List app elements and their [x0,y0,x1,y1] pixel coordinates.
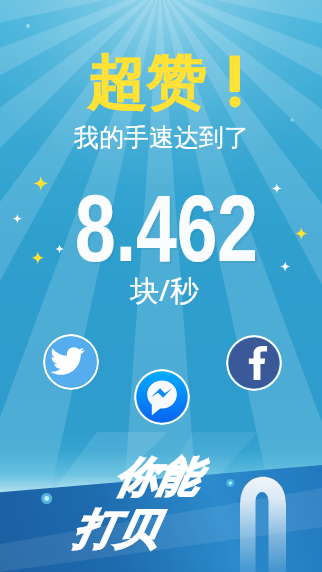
staticText: 打贝 [72,504,156,557]
staticText: 8.462 [77,177,260,283]
button[interactable]: Share on Facebook [226,335,282,391]
staticText: 块/秒 [130,270,199,310]
staticText: 我的手速达到了 [74,122,249,153]
button[interactable]: Share on Messenger [134,369,190,425]
button[interactable]: Share on Twitter [43,334,99,390]
staticText: 8.462 [75,175,258,281]
button[interactable]: Advertisement banner [0,432,322,572]
staticText: 你能 [113,452,197,505]
staticText: 超赞 [87,46,205,120]
